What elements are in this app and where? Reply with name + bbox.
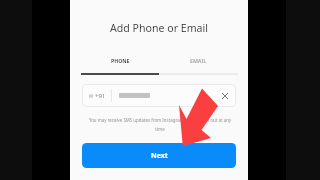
- staticText: Next: [151, 151, 168, 161]
- button[interactable]: +91: [82, 84, 236, 107]
- button[interactable]: Next: [82, 143, 236, 168]
- staticText: Add Phone or Email: [70, 21, 248, 35]
- staticText: +91: [95, 92, 106, 100]
- staticText: EMAIL: [190, 57, 207, 64]
- other: Arrow pointing to Next: [70, 0, 248, 180]
- staticText: PHONE: [111, 57, 130, 64]
- button[interactable]: Clear: [218, 89, 232, 103]
- button[interactable]: PHONE: [81, 54, 159, 75]
- button[interactable]: EMAIL: [159, 54, 238, 75]
- staticText: You may receive SMS updates from Instagr…: [84, 117, 236, 133]
